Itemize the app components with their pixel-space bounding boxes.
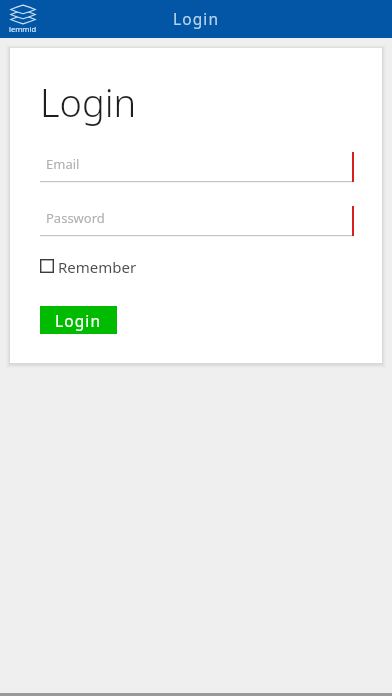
staticText: Login — [55, 310, 102, 331]
staticText: Login — [40, 76, 137, 128]
button[interactable]: Login — [40, 306, 117, 334]
button[interactable]: Remember — [40, 256, 137, 276]
button[interactable]: Email — [40, 152, 354, 182]
staticText: Login — [173, 8, 220, 29]
staticText: Remember — [58, 257, 137, 277]
staticText: Email — [46, 155, 80, 173]
staticText: Password — [46, 209, 105, 227]
staticText: lemmid — [9, 24, 37, 34]
button[interactable]: Password — [40, 206, 354, 236]
button[interactable]: lemmid home — [4, 1, 40, 33]
